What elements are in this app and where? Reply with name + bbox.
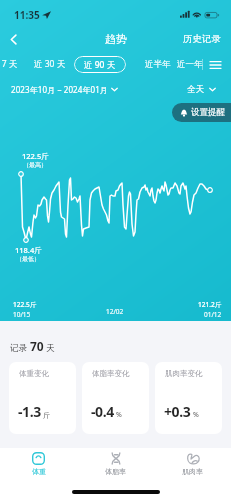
staticText: 设置提醒 [191, 107, 225, 118]
staticText: 肌肉率变化 [165, 369, 203, 378]
staticText: 118.4斤 [15, 245, 42, 255]
staticText: 11:35 [14, 8, 40, 22]
staticText: 天 [46, 343, 55, 354]
button[interactable]: 肌肉率 [154, 448, 231, 480]
staticText: 近一年 [177, 59, 203, 70]
staticText: 12/02 [106, 307, 124, 316]
staticText: 近 90 天 [84, 59, 116, 71]
staticText: 体脂率变化 [92, 369, 130, 378]
button[interactable]: 2023年10月 – 2024年01月 [11, 84, 118, 95]
staticText: -0.4 [91, 402, 114, 421]
staticText: 全天 [187, 84, 204, 95]
staticText: 121.2斤 [198, 300, 222, 309]
staticText: 体重变化 [19, 369, 49, 378]
button[interactable]: 全天 [187, 84, 216, 95]
staticText: （最低） [16, 255, 40, 263]
button[interactable]: 体脂率 [77, 448, 154, 480]
button[interactable]: 体重变化 [9, 362, 76, 434]
staticText: 斤 [43, 411, 50, 420]
staticText: 记录 [10, 343, 27, 354]
button[interactable]: 近半年 [140, 56, 176, 73]
staticText: 体脂率 [105, 467, 126, 476]
button[interactable]: Menu [204, 53, 227, 76]
staticText: 历史记录 [183, 33, 221, 45]
button[interactable]: 近 7 天 [0, 55, 23, 73]
staticText: 2023年10月 – 2024年01月 [11, 84, 108, 95]
staticText: 122.5斤 [13, 300, 37, 309]
button[interactable]: 近 30 天 [29, 55, 71, 73]
staticText: 01/12 [204, 310, 222, 319]
button[interactable]: 近一年 [172, 56, 208, 73]
button[interactable]: 体重 [0, 448, 77, 480]
button[interactable]: 设置提醒 [172, 103, 231, 122]
staticText: 近半年 [145, 59, 171, 70]
staticText: % [116, 410, 122, 420]
button[interactable]: Back [0, 26, 26, 52]
staticText: 趋势 [105, 32, 127, 46]
staticText: +0.3 [164, 402, 191, 421]
button[interactable]: 体脂率变化 [82, 362, 149, 434]
staticText: 10/15 [13, 310, 31, 319]
staticText: 70 [30, 338, 44, 354]
staticText: （最高） [23, 161, 47, 169]
staticText: 122.5斤 [22, 151, 49, 161]
button[interactable]: 历史记录 [173, 33, 231, 45]
button[interactable]: 肌肉率变化 [155, 362, 222, 434]
staticText: 体重 [32, 467, 46, 476]
staticText: 近 30 天 [34, 58, 66, 70]
staticText: % [193, 410, 199, 420]
button[interactable]: 近 90 天 [74, 56, 126, 73]
staticText: -1.3 [18, 402, 41, 421]
staticText: 近 7 天 [0, 58, 18, 70]
staticText: 肌肉率 [182, 467, 203, 476]
